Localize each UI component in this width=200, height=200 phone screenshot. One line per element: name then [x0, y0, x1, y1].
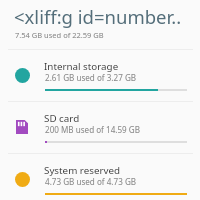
staticText: System reserved — [44, 164, 121, 177]
staticText: <xliff:g id=number.. — [14, 4, 182, 29]
button[interactable]: System reserved — [0, 154, 200, 200]
staticText: 200 MB used of 14.59 GB — [45, 124, 140, 135]
staticText: SD card — [44, 112, 80, 125]
staticText: 7.54 GB used of 22.59 GB — [15, 30, 104, 40]
button[interactable]: Internal storage — [0, 50, 200, 101]
staticText: 4.73 GB used of 4.73 GB — [45, 176, 137, 187]
button[interactable]: SD card — [0, 102, 200, 153]
staticText: 2.61 GB used of 3.27 GB — [45, 72, 137, 83]
staticText: Internal storage — [44, 60, 119, 73]
